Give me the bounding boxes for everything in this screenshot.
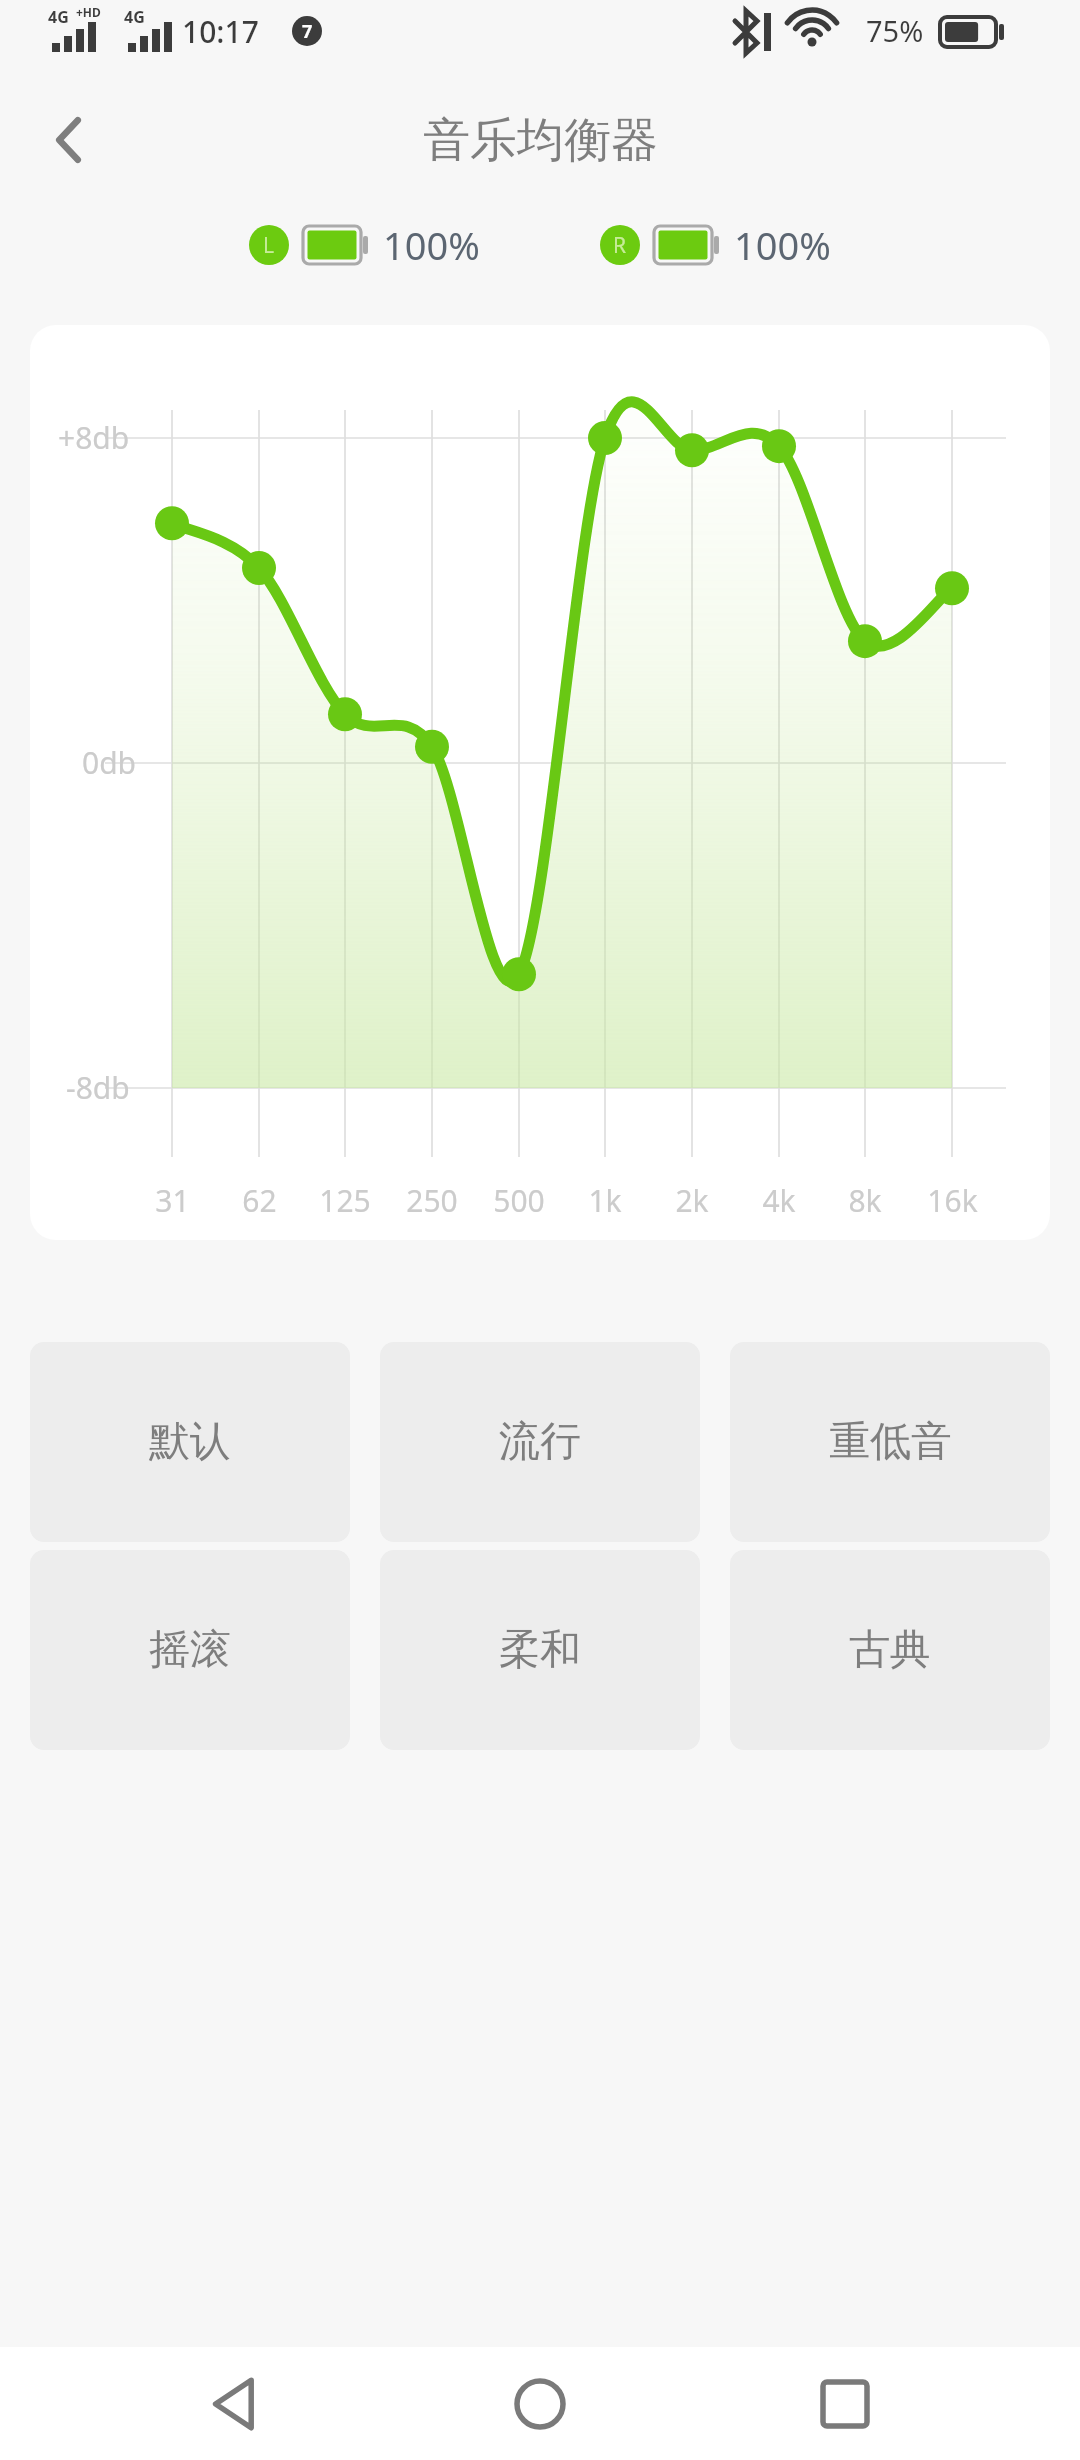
- staticText: 250: [406, 1180, 458, 1221]
- staticText: 默认: [149, 1416, 231, 1468]
- button[interactable]: 默认: [30, 1342, 350, 1542]
- button[interactable]: Recents: [775, 2347, 915, 2460]
- button[interactable]: Back: [20, 90, 120, 190]
- staticText: 100%: [734, 219, 831, 271]
- staticText: 摇滚: [149, 1624, 231, 1676]
- button[interactable]: 摇滚: [30, 1550, 350, 1750]
- staticText: 7: [302, 19, 313, 44]
- staticText: 重低音: [829, 1416, 952, 1468]
- staticText: 75%: [866, 11, 924, 50]
- button[interactable]: R: [600, 219, 831, 271]
- staticText: 音乐均衡器: [423, 111, 658, 170]
- staticText: -8db: [66, 1067, 130, 1108]
- button[interactable]: 流行: [380, 1342, 700, 1542]
- staticText: 8k: [848, 1180, 882, 1221]
- staticText: 0db: [82, 742, 137, 783]
- button[interactable]: L: [249, 219, 480, 271]
- button[interactable]: 古典: [730, 1550, 1050, 1750]
- staticText: +8db: [58, 417, 130, 458]
- staticText: 1k: [588, 1180, 622, 1221]
- staticText: 31: [155, 1180, 190, 1221]
- staticText: 古典: [849, 1624, 931, 1676]
- button[interactable]: Home: [470, 2347, 610, 2460]
- staticText: 4k: [762, 1180, 796, 1221]
- staticText: 500: [493, 1180, 545, 1221]
- staticText: L: [263, 231, 275, 260]
- button[interactable]: 重低音: [730, 1342, 1050, 1542]
- staticText: R: [613, 231, 627, 260]
- staticText: 100%: [383, 219, 480, 271]
- staticText: 流行: [499, 1416, 581, 1468]
- staticText: 柔和: [499, 1624, 581, 1676]
- staticText: +HD: [76, 4, 101, 20]
- button[interactable]: Back: [165, 2347, 305, 2460]
- staticText: 4G: [124, 6, 145, 28]
- button[interactable]: 柔和: [380, 1550, 700, 1750]
- staticText: 125: [319, 1180, 371, 1221]
- staticText: 4G: [48, 6, 69, 28]
- staticText: 62: [242, 1180, 277, 1221]
- staticText: 2k: [675, 1180, 709, 1221]
- staticText: 10:17: [182, 11, 259, 52]
- staticText: 16k: [927, 1180, 978, 1221]
